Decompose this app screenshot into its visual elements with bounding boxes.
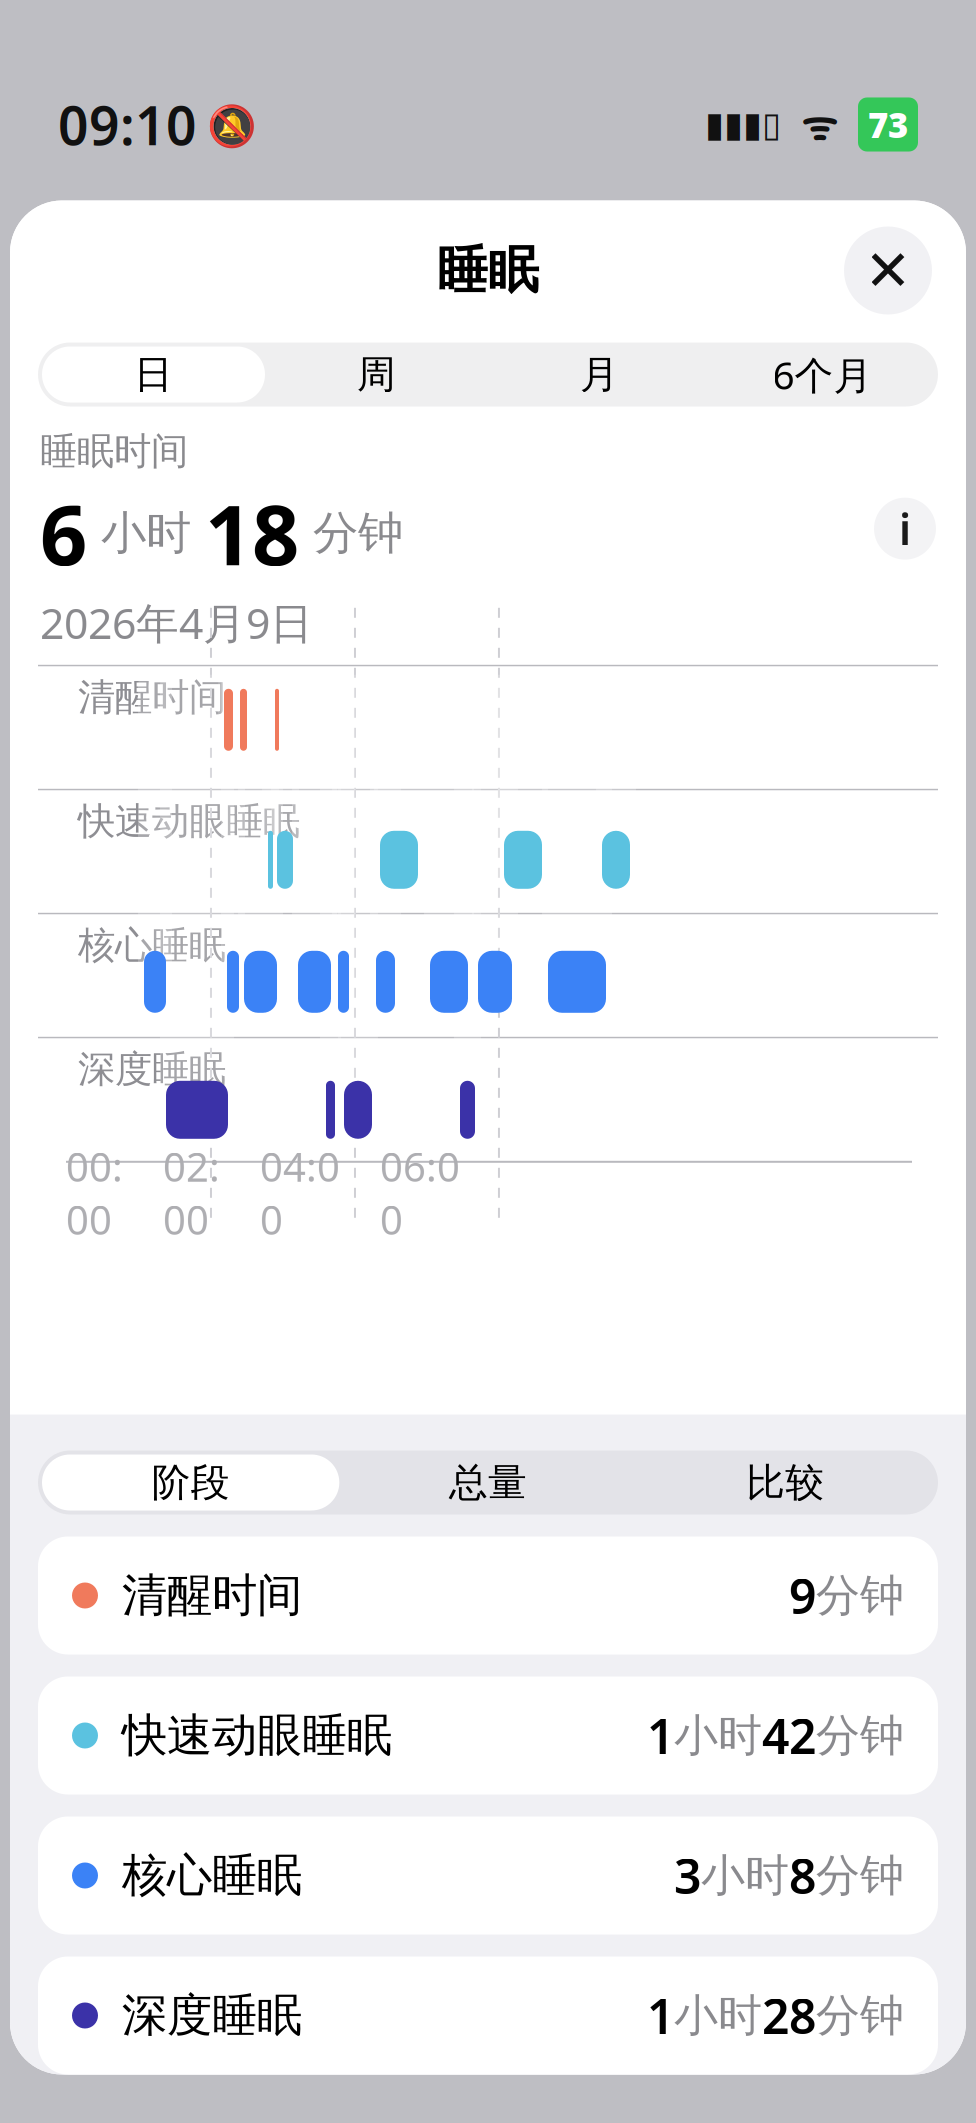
staticText: 月 [580,351,619,398]
staticText: 睡眠 [437,239,539,302]
staticText: 09:10 [58,89,197,160]
staticText: 2026年4月9日 [40,594,313,651]
staticText: ᯤ [781,98,858,151]
staticText: 3 [674,1844,701,1907]
staticText: 深度睡眠 [78,1046,226,1092]
staticText: 73 [868,101,908,147]
button[interactable]: 核心睡眠 [38,1816,938,1934]
staticText: i [899,500,911,557]
staticText: 06:00 [380,1140,460,1246]
staticText: 🔕 [197,98,257,151]
staticText: 00:00 [66,1140,123,1246]
staticText: 小时 [87,505,205,561]
button[interactable]: 日 [42,346,265,402]
staticText: 快速动眼睡眠 [78,798,300,844]
button[interactable]: 阶段 [42,1454,339,1510]
staticText: 42 [762,1704,816,1767]
staticText: 6 [40,478,87,588]
staticText: 小时 [701,1848,789,1902]
staticText: 小时 [674,1988,762,2042]
staticText: 日 [134,351,173,398]
button[interactable]: 6个月 [711,346,934,402]
button[interactable]: 深度睡眠 [38,1956,938,2074]
staticText: 分钟 [816,1568,904,1622]
staticText: 清醒时间 [78,674,226,720]
staticText: 8 [789,1844,816,1907]
staticText: 比较 [746,1459,824,1506]
staticText: 1 [647,1704,674,1767]
staticText: 9 [789,1564,816,1627]
staticText: 总量 [449,1459,527,1506]
staticText: 核心睡眠 [108,1848,302,1903]
staticText: ▮▮▮▯ [705,105,781,144]
button[interactable]: 比较 [637,1454,934,1510]
button[interactable]: 信息 [874,498,936,560]
staticText: 分钟 [299,505,403,561]
staticText: 分钟 [816,1708,904,1762]
staticText: ✕ [864,239,911,302]
staticText: 1 [647,1984,674,2047]
button[interactable]: 清醒时间 [38,1536,938,1654]
staticText: 28 [762,1984,816,2047]
button[interactable]: 总量 [339,1454,637,1510]
staticText: 核心睡眠 [78,922,226,968]
button[interactable]: 月 [488,346,711,402]
button[interactable]: 周 [265,346,488,402]
staticText: 小时 [674,1708,762,1762]
staticText: 快速动眼睡眠 [108,1708,392,1763]
staticText: 阶段 [152,1459,230,1506]
staticText: 周 [357,351,396,398]
staticText: 清醒时间 [108,1568,302,1623]
staticText: 18 [205,478,299,588]
staticText: 分钟 [816,1848,904,1902]
button[interactable]: 关闭 [844,226,932,314]
staticText: 分钟 [816,1988,904,2042]
staticText: 睡眠时间 [40,428,188,474]
staticText: 深度睡眠 [108,1988,302,2043]
button[interactable]: 快速动眼睡眠 [38,1676,938,1794]
staticText: 6个月 [772,349,872,400]
staticText: 04:00 [260,1140,340,1246]
staticText: 02:00 [163,1140,220,1246]
